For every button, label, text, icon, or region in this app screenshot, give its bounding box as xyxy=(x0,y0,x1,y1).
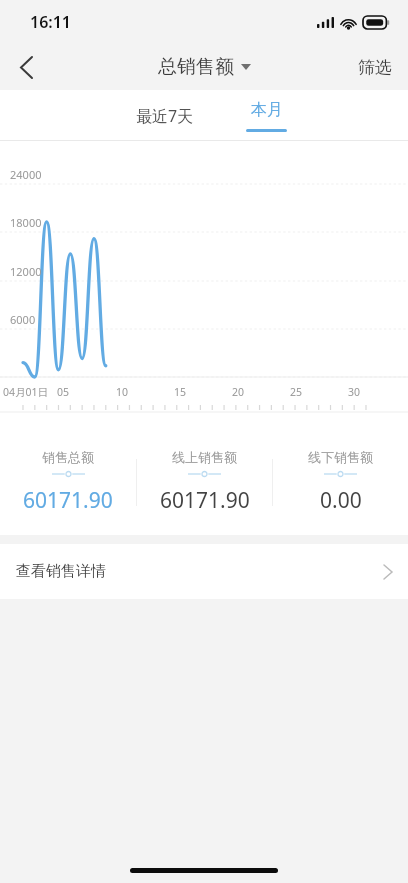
button[interactable]: 线上销售额 xyxy=(137,449,272,515)
staticText: 线下销售额 xyxy=(308,449,373,465)
staticText: 销售总额 xyxy=(42,449,94,465)
staticText: 24000 xyxy=(10,167,42,182)
staticText: 线上销售额 xyxy=(172,449,237,465)
staticText: 25 xyxy=(290,385,303,399)
staticText: 12000 xyxy=(10,264,42,279)
button[interactable]: 线下销售额 xyxy=(273,449,408,515)
staticText: 05 xyxy=(57,385,70,399)
staticText: 总销售额 xyxy=(158,55,234,79)
staticText: 60171.90 xyxy=(23,486,113,515)
staticText: 30 xyxy=(348,385,361,399)
button[interactable]: 本月 xyxy=(238,100,295,132)
staticText: 10 xyxy=(116,385,129,399)
staticText: 最近7天 xyxy=(136,105,194,127)
staticText: 18000 xyxy=(10,215,42,230)
staticText: 15 xyxy=(174,385,187,399)
staticText: 20 xyxy=(232,385,245,399)
button[interactable]: 销售总额 xyxy=(0,449,136,515)
staticText: 6000 xyxy=(10,312,36,327)
staticText: 0.00 xyxy=(320,486,362,515)
button[interactable]: 最近7天 xyxy=(114,93,216,139)
staticText: 60171.90 xyxy=(160,486,250,515)
staticText: 筛选 xyxy=(358,57,392,78)
staticText: 查看销售详情 xyxy=(16,562,106,581)
staticText: 04月01日 xyxy=(3,385,49,399)
button[interactable]: Back xyxy=(0,44,52,90)
button[interactable]: 筛选 xyxy=(342,47,408,88)
staticText: 16:11 xyxy=(30,11,72,33)
button[interactable]: 总销售额 xyxy=(152,49,257,85)
button[interactable]: 查看销售详情 xyxy=(0,544,408,599)
staticText: 本月 xyxy=(251,100,283,120)
